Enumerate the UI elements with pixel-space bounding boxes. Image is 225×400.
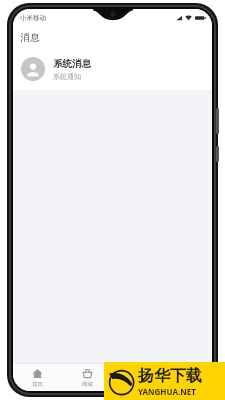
staticText: 系统通知 bbox=[53, 72, 81, 81]
staticText: 首页 bbox=[32, 381, 43, 388]
staticText: 消息 bbox=[20, 31, 40, 44]
staticText: 系统消息 bbox=[53, 58, 91, 70]
button[interactable]: 首页 bbox=[13, 364, 62, 391]
button[interactable]: 系统消息 bbox=[13, 48, 212, 90]
button[interactable]: 商城 bbox=[62, 364, 112, 391]
staticText: YANGHUA.NET bbox=[138, 386, 196, 397]
staticText: 扬华下载 bbox=[138, 366, 202, 386]
staticText: 商城 bbox=[82, 381, 93, 388]
staticText: 小米移动 bbox=[20, 14, 46, 22]
